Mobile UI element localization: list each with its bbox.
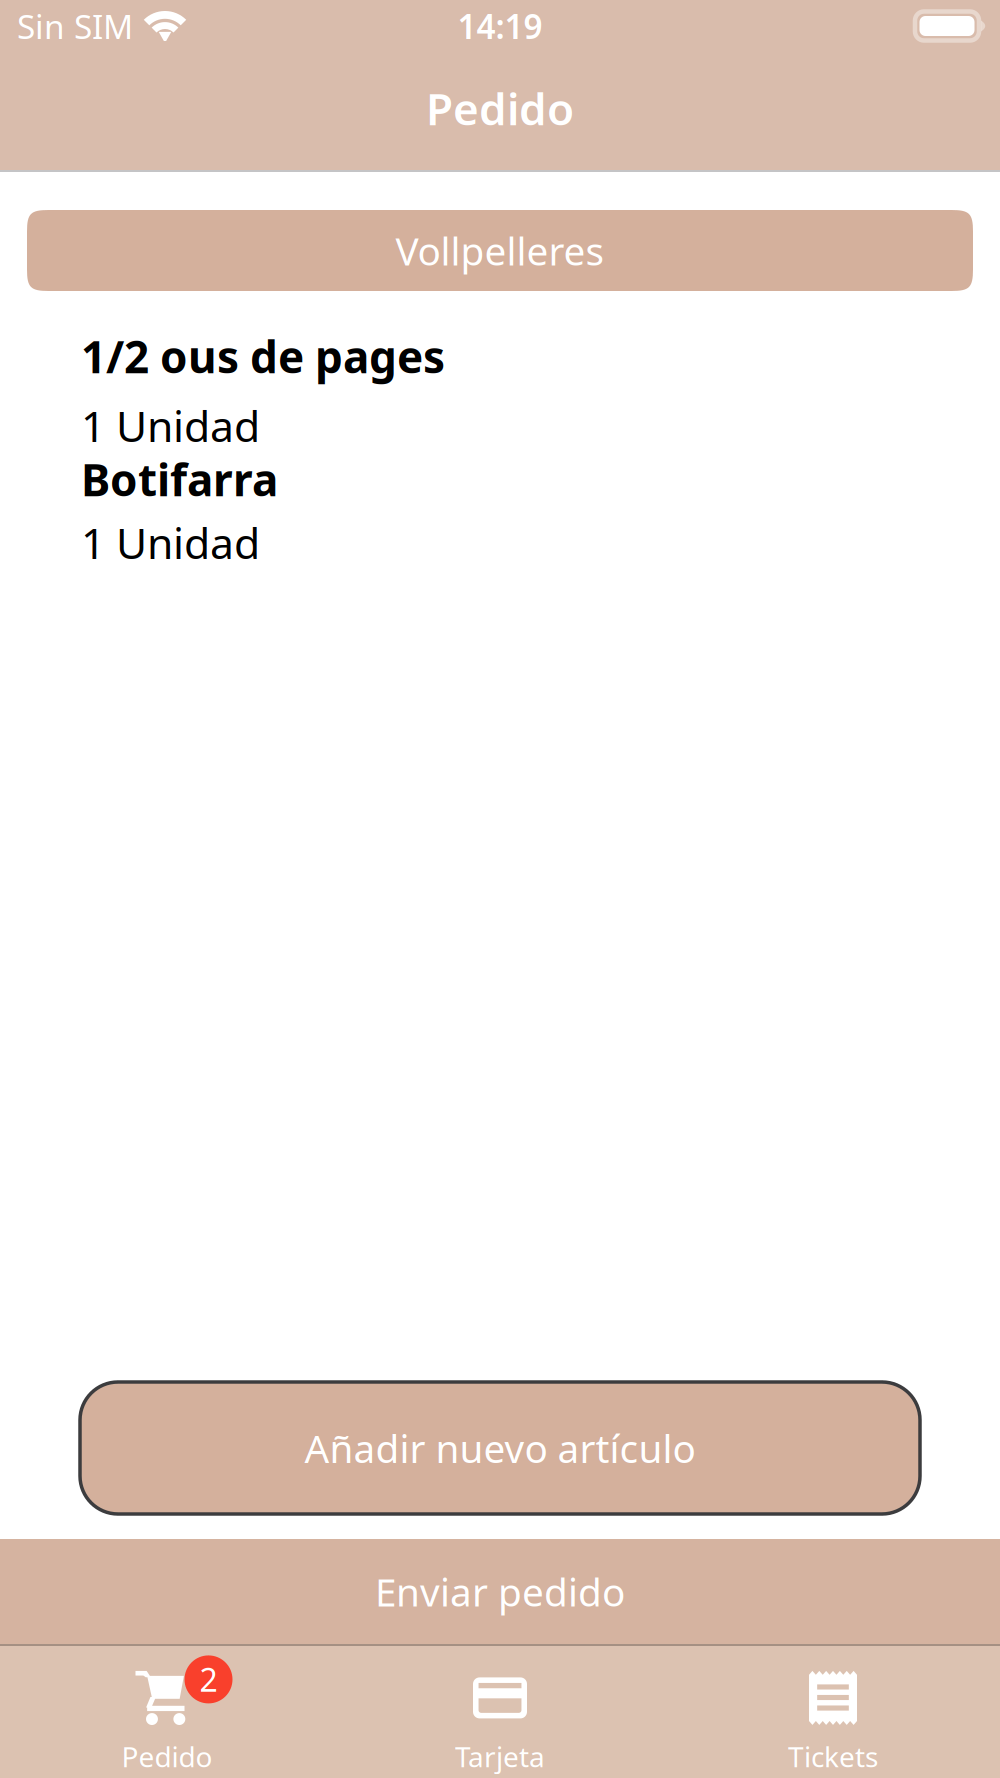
- staticText: Añadir nuevo artículo: [304, 1422, 695, 1474]
- staticText: Sin SIM: [17, 4, 133, 48]
- button[interactable]: 2: [0, 1646, 333, 1778]
- button[interactable]: Tickets: [666, 1646, 999, 1778]
- staticText: 1/2 ous de pages: [81, 327, 445, 385]
- staticText: 2: [199, 1658, 217, 1701]
- staticText: 1 Unidad: [81, 397, 260, 454]
- staticText: Tarjeta: [455, 1738, 545, 1775]
- button[interactable]: Enviar pedido: [0, 1539, 1000, 1644]
- staticText: Enviar pedido: [375, 1566, 625, 1617]
- staticText: Botifarra: [81, 450, 278, 508]
- staticText: Tickets: [788, 1738, 878, 1775]
- button[interactable]: Tarjeta: [333, 1646, 666, 1778]
- staticText: 1 Unidad: [81, 514, 260, 571]
- staticText: Vollpelleres: [395, 225, 604, 276]
- button[interactable]: Vollpelleres: [27, 210, 973, 291]
- staticText: 14:19: [457, 4, 542, 48]
- staticText: Pedido: [426, 79, 574, 137]
- button[interactable]: Añadir nuevo artículo: [80, 1382, 920, 1514]
- staticText: Pedido: [121, 1738, 212, 1775]
